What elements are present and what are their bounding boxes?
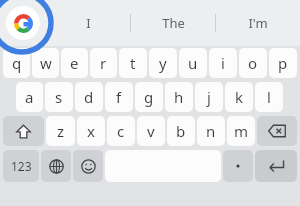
staticText: v <box>147 121 155 141</box>
button[interactable]: u <box>179 48 207 78</box>
button[interactable]: t <box>119 48 147 78</box>
staticText: k <box>235 87 244 107</box>
staticText: s <box>55 87 63 107</box>
staticText: t <box>130 53 136 73</box>
staticText: c <box>117 121 125 141</box>
button[interactable]: z <box>46 116 75 146</box>
staticText: b <box>176 121 186 141</box>
staticText: I <box>86 14 91 32</box>
button[interactable]: r <box>90 48 117 78</box>
button[interactable]: x <box>77 116 105 146</box>
button[interactable]: Emoji <box>73 150 103 182</box>
staticText: u <box>188 53 198 73</box>
staticText: d <box>84 87 94 107</box>
staticText: r <box>100 53 107 73</box>
button[interactable]: Numbers and symbols <box>3 150 39 182</box>
button[interactable]: The <box>131 0 215 46</box>
button[interactable]: i <box>209 48 237 78</box>
button[interactable]: c <box>107 116 135 146</box>
button[interactable]: j <box>195 82 223 112</box>
button[interactable]: v <box>137 116 165 146</box>
staticText: p <box>278 53 288 73</box>
button[interactable]: I'm <box>216 0 300 46</box>
staticText: l <box>267 87 271 107</box>
staticText: x <box>87 121 95 141</box>
button[interactable]: h <box>165 82 193 112</box>
staticText: o <box>248 53 258 73</box>
staticText: n <box>206 121 216 141</box>
staticText: i <box>221 53 225 73</box>
staticText: w <box>40 53 52 73</box>
button[interactable]: o <box>239 48 267 78</box>
button[interactable]: Google search <box>6 6 40 40</box>
staticText: I'm <box>248 14 268 32</box>
button[interactable]: l <box>255 82 283 112</box>
staticText: y <box>159 53 167 73</box>
button[interactable]: p <box>269 48 297 78</box>
button[interactable]: d <box>75 82 103 112</box>
button[interactable]: f <box>105 82 133 112</box>
staticText: g <box>144 87 154 107</box>
button[interactable]: Shift <box>3 116 44 146</box>
button[interactable]: q <box>3 48 30 78</box>
staticText: a <box>25 87 34 107</box>
staticText: m <box>234 121 249 141</box>
button[interactable]: y <box>149 48 177 78</box>
staticText: z <box>57 121 65 141</box>
button[interactable]: Change language <box>41 150 71 182</box>
staticText: q <box>12 53 22 73</box>
button[interactable]: m <box>227 116 255 146</box>
button[interactable]: a <box>16 82 43 112</box>
button[interactable]: Enter <box>255 150 297 182</box>
staticText: f <box>116 87 122 107</box>
button[interactable]: g <box>135 82 163 112</box>
button[interactable]: Backspace <box>257 116 297 146</box>
button[interactable]: I <box>46 0 130 46</box>
button[interactable]: k <box>225 82 253 112</box>
button[interactable]: w <box>32 48 59 78</box>
staticText: e <box>70 53 79 73</box>
staticText: The <box>162 14 185 32</box>
button[interactable]: b <box>167 116 195 146</box>
button[interactable]: s <box>45 82 73 112</box>
button[interactable]: n <box>197 116 225 146</box>
button[interactable]: Period <box>223 150 253 182</box>
staticText: h <box>174 87 184 107</box>
staticText: 123 <box>11 158 32 174</box>
staticText: j <box>207 87 211 107</box>
button[interactable]: e <box>61 48 88 78</box>
